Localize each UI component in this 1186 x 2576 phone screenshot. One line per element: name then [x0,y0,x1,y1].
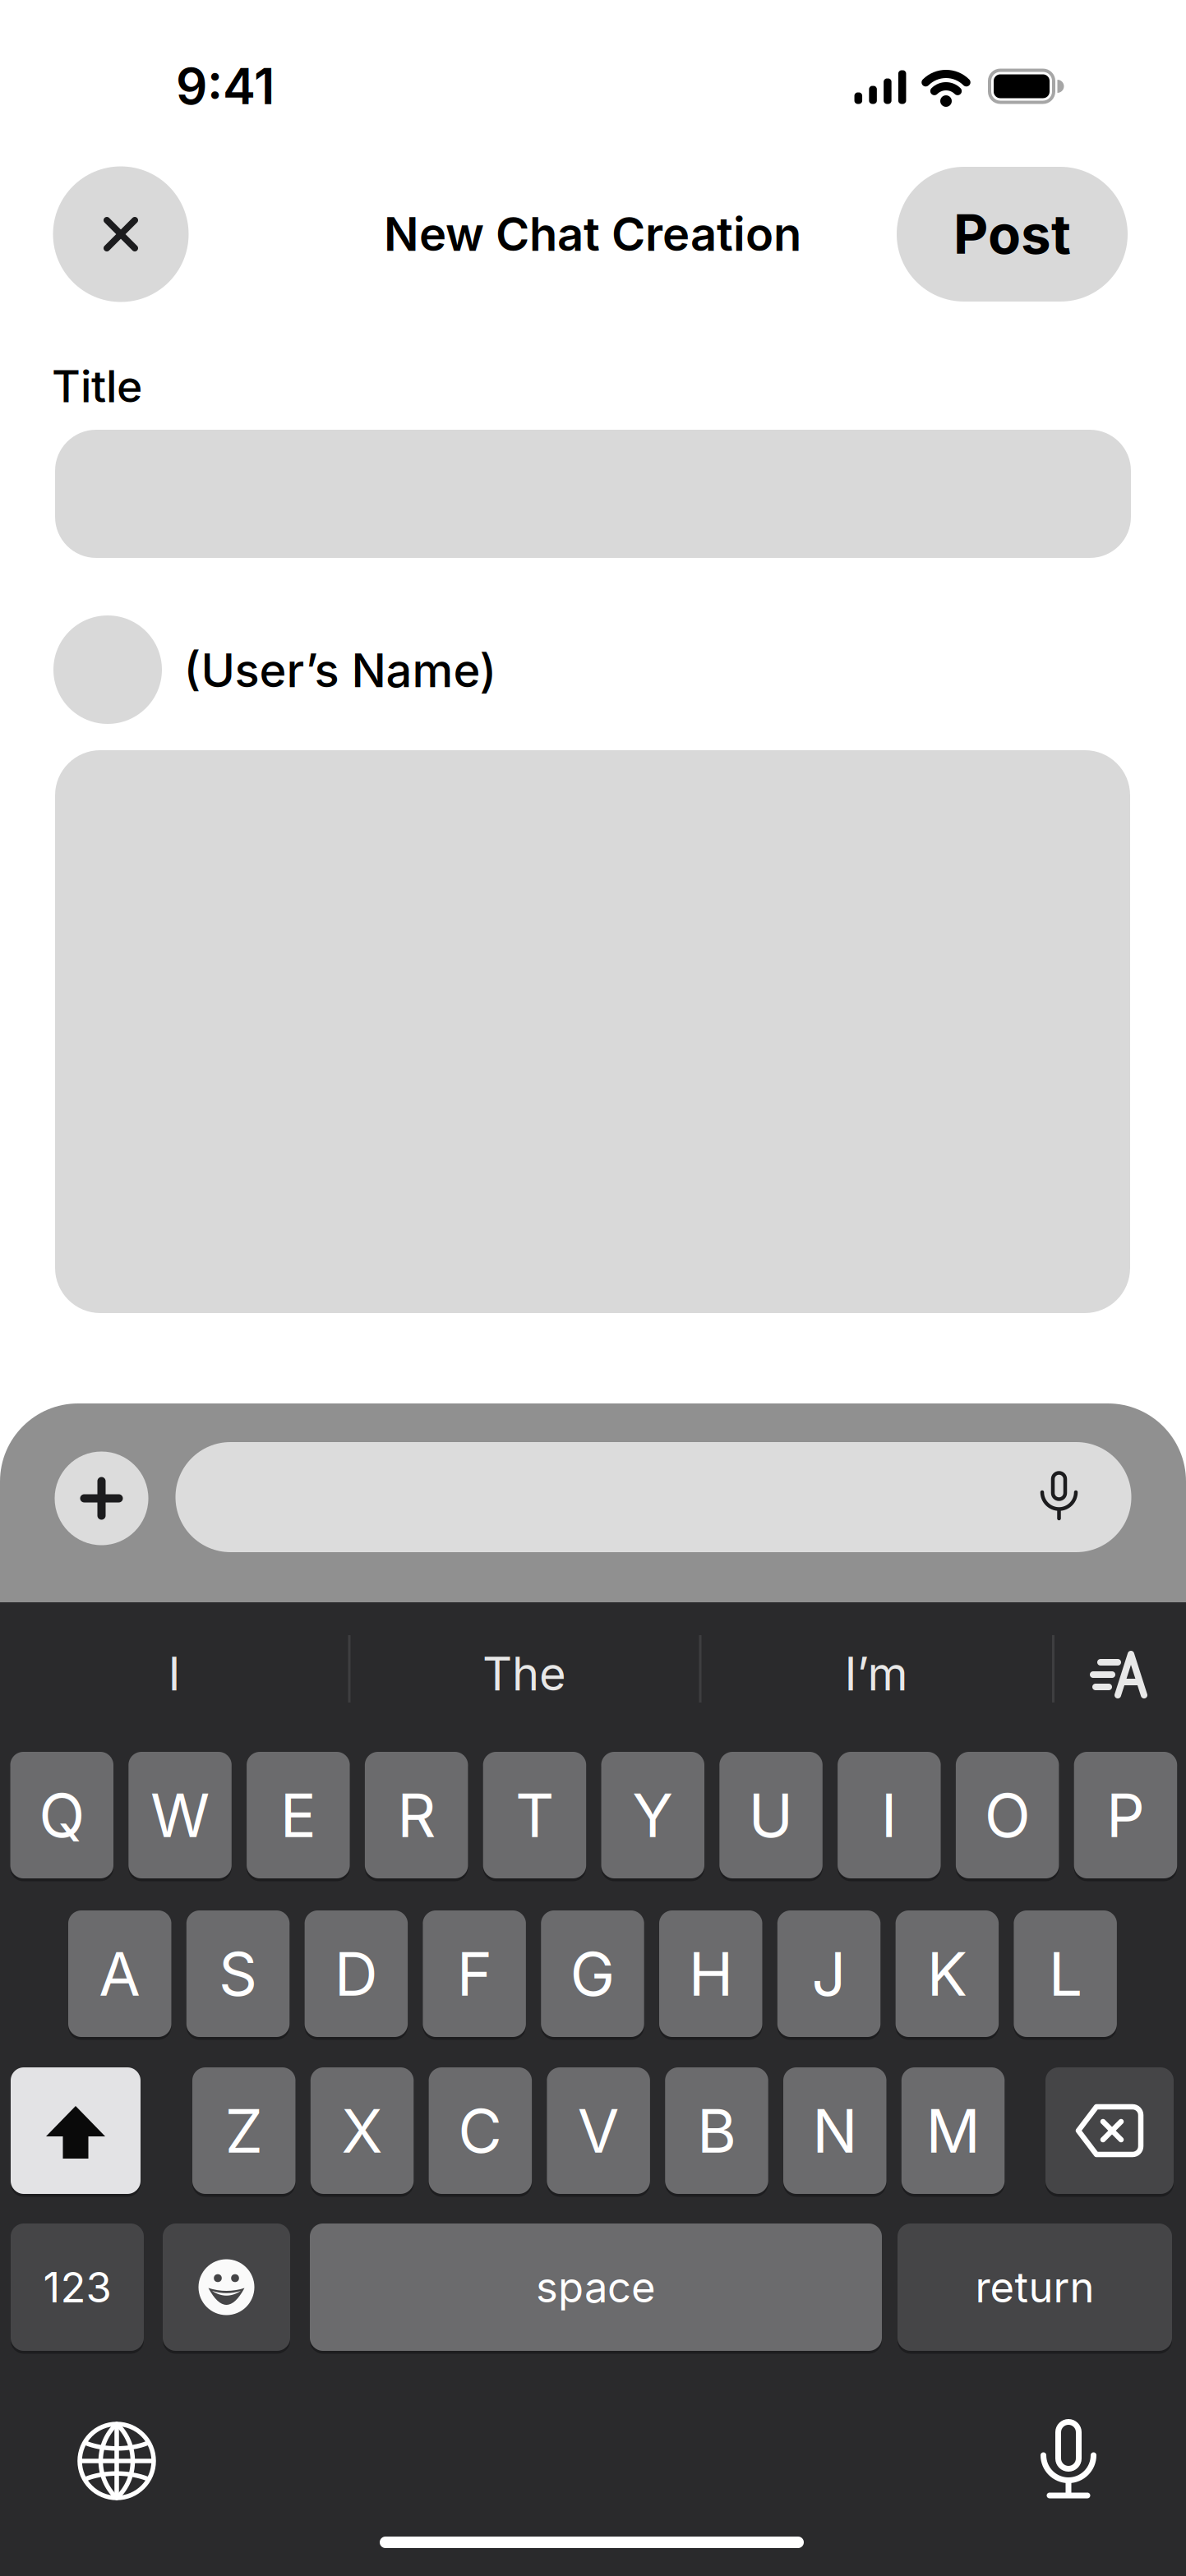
button[interactable]: H [659,1910,762,2037]
button[interactable]: 123 [11,2223,144,2351]
button[interactable]: I’m [712,1629,1041,1719]
button[interactable]: I [10,1629,339,1719]
staticText: O [984,1779,1030,1852]
staticText: L [1048,1937,1082,2010]
button[interactable]: Shift [11,2067,141,2194]
staticText: X [342,2094,383,2167]
button[interactable]: O [956,1752,1059,1878]
staticText: P [1106,1779,1145,1852]
button[interactable]: P [1074,1752,1177,1878]
staticText: Z [225,2094,263,2167]
staticText: V [578,2094,619,2167]
button[interactable]: Add attachment [55,1452,148,1545]
button[interactable]: K [896,1910,999,2037]
staticText: I [881,1779,897,1852]
staticText: A [99,1937,141,2010]
staticText: I [168,1646,180,1702]
button[interactable]: Dictate [1042,2419,1095,2500]
staticText: Post [953,202,1071,267]
staticText: (User’s Name) [184,643,497,698]
staticText: N [812,2094,857,2167]
button[interactable]: U [719,1752,823,1878]
button[interactable]: L [1014,1910,1117,2037]
button[interactable]: Y [601,1752,704,1878]
staticText: C [458,2094,503,2167]
button[interactable]: Close [53,166,189,302]
staticText: Title [52,360,142,413]
button[interactable]: D [305,1910,408,2037]
button[interactable]: I [838,1752,941,1878]
button[interactable]: N [783,2067,886,2194]
button[interactable]: The [360,1629,689,1719]
staticText: K [927,1937,967,2010]
staticText: 123 [43,2262,111,2312]
staticText: F [457,1937,492,2010]
staticText: E [280,1779,316,1852]
button[interactable]: B [665,2067,768,2194]
staticText: J [812,1937,846,2010]
staticText: B [697,2094,736,2167]
staticText: M [926,2094,980,2167]
button[interactable]: S [186,1910,290,2037]
button[interactable]: return [898,2223,1172,2351]
staticText: space [536,2262,656,2312]
button[interactable]: Predictive typing [1092,1654,1147,1695]
button[interactable]: E [247,1752,350,1878]
button[interactable]: Next keyboard [77,2422,156,2500]
button[interactable]: Message field [175,1442,1131,1552]
button[interactable]: Delete [1045,2067,1174,2194]
button[interactable]: Z [192,2067,295,2194]
staticText: New Chat Creation [384,206,801,262]
staticText: The [482,1646,566,1702]
staticText: G [570,1937,615,2010]
button[interactable]: C [429,2067,532,2194]
button[interactable]: T [483,1752,586,1878]
staticText: I’m [845,1646,908,1702]
button[interactable]: F [423,1910,526,2037]
button[interactable]: G [541,1910,644,2037]
button[interactable]: A [68,1910,171,2037]
staticText: U [748,1779,794,1852]
staticText: R [397,1779,436,1852]
button[interactable]: W [128,1752,232,1878]
button[interactable]: J [777,1910,881,2037]
button[interactable]: R [365,1752,468,1878]
button[interactable]: Post [897,167,1128,302]
staticText: 9:41 [176,56,275,116]
staticText: T [515,1779,554,1852]
button[interactable]: Q [10,1752,113,1878]
button[interactable]: M [901,2067,1005,2194]
button[interactable]: space [310,2223,882,2351]
button[interactable]: Title [55,430,1131,558]
button[interactable]: X [311,2067,414,2194]
staticText: H [689,1937,733,2010]
button[interactable]: V [547,2067,650,2194]
staticText: W [150,1779,210,1852]
staticText: S [219,1937,257,2010]
staticText: D [334,1937,378,2010]
button[interactable]: Emoji [163,2223,290,2351]
staticText: return [975,2262,1094,2312]
staticText: Y [632,1779,673,1852]
staticText: Q [39,1779,85,1852]
